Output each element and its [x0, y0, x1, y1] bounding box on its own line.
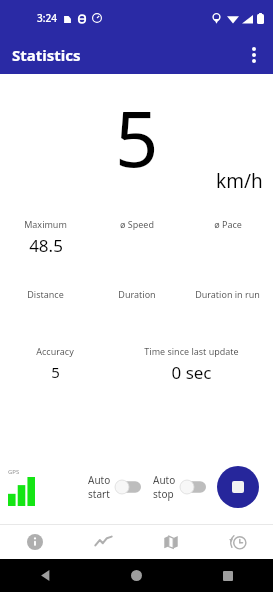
staticText: ø Speed [120, 218, 154, 230]
staticText: start [88, 487, 110, 501]
button[interactable]: Map [137, 525, 205, 559]
staticText: km/h [216, 168, 263, 194]
staticText: 0 sec [171, 361, 212, 384]
button[interactable]: Auto [153, 471, 206, 503]
button[interactable]: GPS signal [8, 468, 35, 506]
staticText: Duration in run [195, 288, 260, 300]
button[interactable]: Back [0, 559, 91, 592]
staticText: Accuracy [36, 345, 74, 357]
staticText: Auto [153, 473, 176, 487]
staticText: 5 [115, 86, 159, 190]
staticText: GPS [8, 468, 20, 476]
button[interactable]: History [205, 525, 273, 559]
button[interactable]: Chart [69, 525, 137, 559]
staticText: Auto [88, 473, 111, 487]
staticText: Distance [27, 288, 64, 300]
button[interactable]: More options [235, 36, 273, 74]
staticText: Duration [118, 288, 156, 300]
staticText: stop [153, 487, 174, 501]
staticText: ø Pace [214, 218, 242, 230]
button[interactable]: Stop recording [217, 466, 259, 508]
staticText: Time since last update [144, 345, 239, 357]
staticText: 48.5 [29, 234, 63, 257]
staticText: 3:24 [37, 11, 57, 25]
staticText: Statistics [12, 45, 81, 65]
button[interactable]: Home [91, 559, 182, 592]
button[interactable]: Auto [88, 471, 141, 503]
button[interactable]: Recent apps [182, 559, 273, 592]
staticText: Maximum [24, 218, 67, 230]
staticText: 5 [51, 362, 60, 382]
button[interactable]: Info [0, 525, 69, 559]
